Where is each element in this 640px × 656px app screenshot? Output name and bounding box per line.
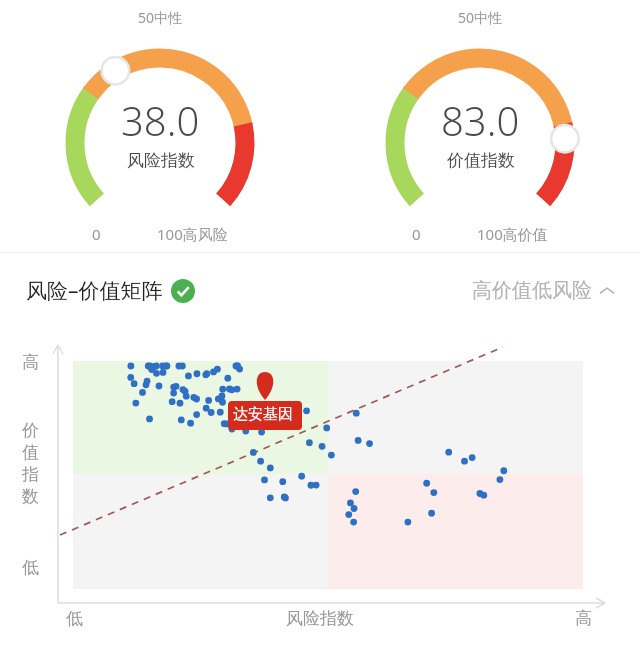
other: 展开 [600,284,614,298]
staticText: 0 [412,224,421,244]
staticText: 50中性 [138,8,183,27]
staticText: 50中性 [458,8,503,27]
staticText: 风险指数 [286,608,354,629]
staticText: 价值指数 [447,150,515,171]
staticText: 100高风险 [157,224,228,244]
staticText: 高 [22,352,39,373]
staticText: 38.0 [121,93,200,147]
staticText: 风险指数 [127,150,195,171]
staticText: 价 值 指 数 [22,420,39,507]
staticText: 低 [22,557,39,578]
other: 已验证 [171,279,195,303]
staticText: 低 [66,608,83,629]
button[interactable]: 高价值低风险 [472,278,614,303]
button[interactable]: 风险–价值矩阵 [26,276,195,305]
staticText: 达安基因 [233,405,293,424]
staticText: 0 [92,224,101,244]
staticText: 100高价值 [477,224,548,244]
staticText: 高价值低风险 [472,278,592,303]
staticText: 风险–价值矩阵 [26,276,163,305]
staticText: 高 [575,608,592,629]
staticText: 83.0 [441,93,520,147]
